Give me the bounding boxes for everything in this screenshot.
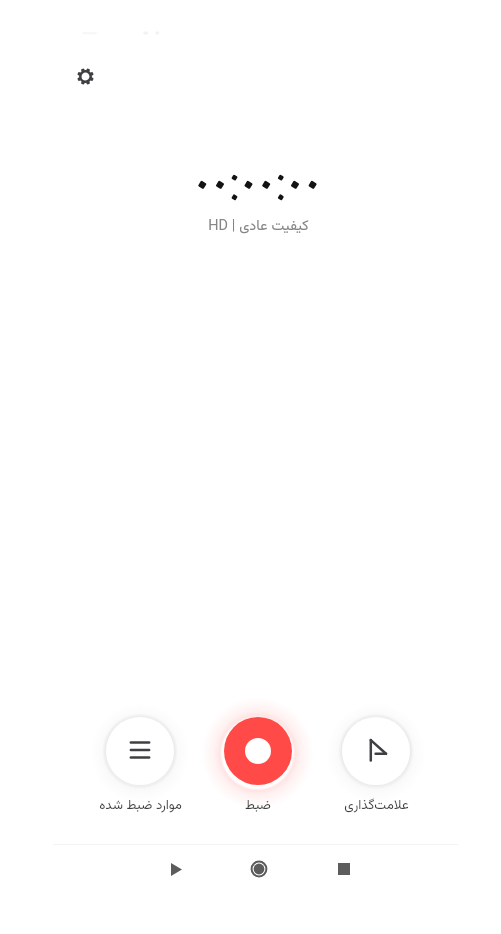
button[interactable]: Back [152,845,200,893]
button[interactable]: Record [224,717,292,785]
button[interactable]: Bookmark [342,717,410,785]
staticText: موارد ضبط شده [99,795,182,816]
button[interactable]: موارد ضبط شده [60,795,220,816]
button[interactable]: Recents [320,845,368,893]
button[interactable]: Home [235,845,283,893]
button[interactable]: علامت‌گذاری [296,795,456,816]
staticText: ضبط [245,795,271,816]
button[interactable]: ضبط [178,795,338,816]
staticText: علامت‌گذاری [344,795,409,816]
button[interactable]: Recordings [106,717,174,785]
button[interactable]: Settings [67,58,104,95]
button[interactable]: HD | کیفیت عادی [150,215,366,238]
staticText: HD | کیفیت عادی [208,215,309,238]
